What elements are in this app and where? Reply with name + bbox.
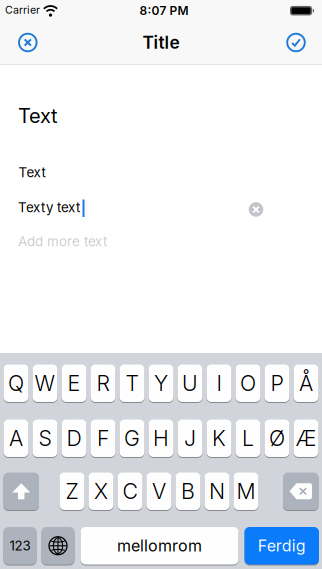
button[interactable]: N — [204, 472, 229, 510]
button[interactable]: I — [206, 364, 231, 402]
button[interactable]: G — [119, 419, 144, 457]
staticText: Q — [8, 371, 24, 396]
staticText: B — [181, 479, 195, 504]
button[interactable]: Ø — [264, 419, 289, 457]
staticText: N — [209, 479, 225, 504]
staticText: F — [97, 426, 109, 451]
button[interactable]: C — [117, 472, 142, 510]
button[interactable]: Texty text — [18, 199, 80, 215]
button[interactable]: Add more text — [18, 233, 107, 249]
button[interactable]: Next keyboard — [41, 526, 74, 565]
staticText: X — [94, 479, 108, 504]
button[interactable]: P — [264, 364, 289, 402]
staticText: Æ — [295, 426, 316, 451]
staticText: K — [212, 426, 226, 451]
staticText: Text — [18, 104, 58, 128]
staticText: Ø — [269, 426, 285, 451]
staticText: 8:07 PM — [139, 4, 188, 18]
button[interactable]: Cancel — [18, 32, 38, 52]
staticText: H — [153, 426, 169, 451]
button[interactable]: Æ — [293, 419, 318, 457]
button[interactable]: Delete — [283, 472, 318, 510]
staticText: D — [66, 426, 81, 451]
button[interactable]: K — [206, 419, 231, 457]
button[interactable]: D — [61, 419, 86, 457]
button[interactable]: 123 — [3, 526, 36, 565]
button[interactable]: E — [61, 364, 86, 402]
staticText: Text — [18, 164, 45, 180]
button[interactable]: X — [88, 472, 113, 510]
button[interactable]: F — [90, 419, 115, 457]
staticText: R — [96, 371, 109, 396]
staticText: Y — [154, 371, 168, 396]
staticText: I — [216, 371, 221, 396]
staticText: 123 — [9, 538, 30, 554]
button[interactable]: R — [90, 364, 115, 402]
button[interactable]: J — [177, 419, 202, 457]
staticText: J — [184, 426, 196, 451]
button[interactable]: U — [177, 364, 202, 402]
button[interactable]: Shift — [3, 472, 39, 510]
button[interactable]: Ferdig — [244, 526, 319, 565]
button[interactable]: S — [32, 419, 57, 457]
staticText: mellomrom — [117, 536, 202, 555]
staticText: Title — [142, 32, 179, 53]
staticText: A — [9, 426, 23, 451]
button[interactable]: V — [146, 472, 171, 510]
staticText: U — [182, 371, 198, 396]
button[interactable]: T — [119, 364, 144, 402]
staticText: S — [38, 426, 51, 451]
staticText: T — [125, 371, 138, 396]
staticText: Ferdig — [258, 536, 306, 555]
staticText: P — [270, 371, 283, 396]
button[interactable]: L — [235, 419, 260, 457]
staticText: Carrier — [5, 4, 40, 16]
staticText: O — [240, 371, 256, 396]
button[interactable]: Y — [148, 364, 173, 402]
staticText: G — [124, 426, 140, 451]
button[interactable]: B — [175, 472, 200, 510]
button[interactable]: M — [233, 472, 258, 510]
button[interactable]: mellomrom — [80, 526, 238, 565]
staticText: Å — [299, 371, 313, 396]
button[interactable]: A — [3, 419, 28, 457]
button[interactable]: Done — [286, 32, 306, 52]
button[interactable]: Q — [3, 364, 28, 402]
button[interactable]: Clear text — [249, 202, 263, 217]
button[interactable]: Z — [59, 472, 84, 510]
staticText: C — [122, 479, 137, 504]
staticText: E — [67, 371, 80, 396]
staticText: V — [152, 479, 166, 504]
button[interactable]: W — [32, 364, 57, 402]
staticText: Z — [65, 479, 78, 504]
staticText: L — [242, 426, 254, 451]
button[interactable]: Å — [293, 364, 318, 402]
staticText: Add more text — [18, 233, 107, 249]
button[interactable]: H — [148, 419, 173, 457]
button[interactable]: O — [235, 364, 260, 402]
staticText: W — [34, 371, 55, 396]
staticText: M — [236, 479, 255, 504]
staticText: Texty text — [18, 199, 80, 215]
